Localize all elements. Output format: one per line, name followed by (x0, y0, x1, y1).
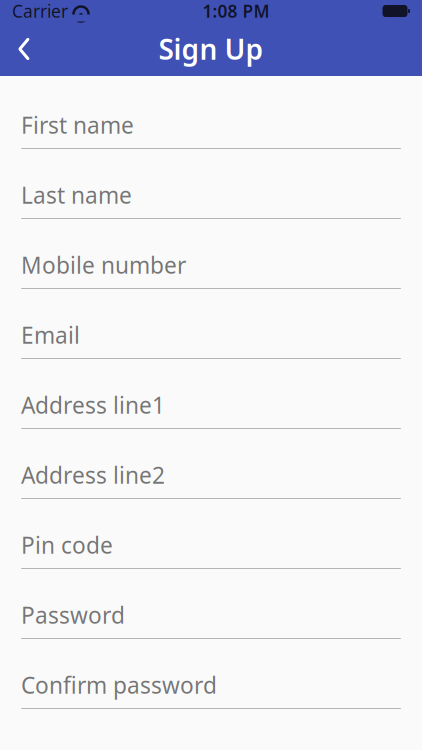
staticText: Carrier (12, 0, 68, 22)
button[interactable]: Confirm password (0, 662, 422, 732)
button[interactable]: Address line1 (0, 382, 422, 452)
staticText: Mobile number (21, 250, 186, 280)
staticText: 1:08 PM (202, 0, 269, 22)
button[interactable]: Password (0, 592, 422, 662)
staticText: Last name (21, 180, 132, 210)
button[interactable]: Back (0, 22, 48, 76)
button[interactable]: Mobile number (0, 242, 422, 312)
button[interactable]: Last name (0, 172, 422, 242)
staticText: Sign Up (158, 30, 263, 68)
button[interactable]: Email (0, 312, 422, 382)
button[interactable]: Pin code (0, 522, 422, 592)
button[interactable]: Address line2 (0, 452, 422, 522)
staticText: Email (21, 320, 80, 350)
staticText: Password (21, 600, 125, 630)
staticText: First name (21, 110, 134, 140)
staticText: Confirm password (21, 670, 217, 700)
staticText: Pin code (21, 530, 113, 560)
button[interactable]: First name (0, 102, 422, 172)
staticText: Address line1 (21, 390, 165, 420)
staticText: Address line2 (21, 460, 165, 490)
